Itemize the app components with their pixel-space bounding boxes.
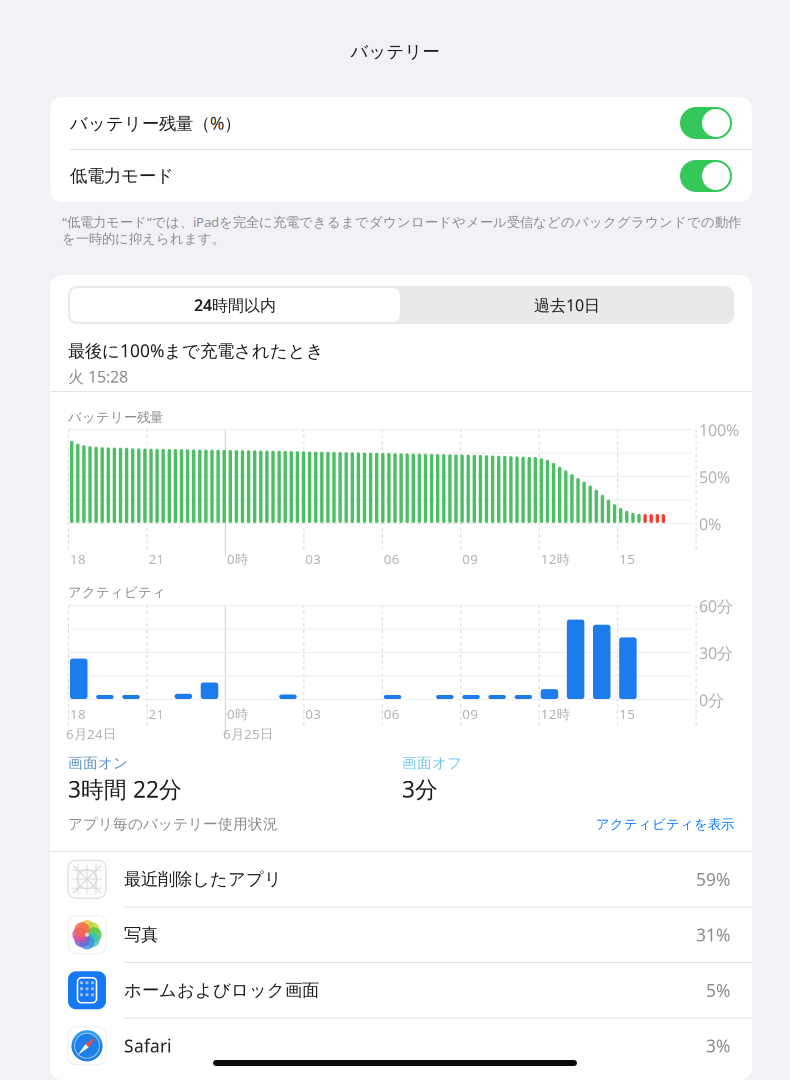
staticText: 59% <box>696 868 730 891</box>
staticText: 12時 <box>541 550 570 568</box>
staticText: 低電力モード <box>70 165 174 187</box>
staticText: 3分 <box>402 774 438 804</box>
staticText: 画面オフ <box>402 754 462 772</box>
staticText: 最近削除したアプリ <box>124 869 282 890</box>
staticText: 06 <box>384 550 400 568</box>
staticText: 15 <box>619 550 635 568</box>
button[interactable]: 低電力モード <box>50 150 752 202</box>
staticText: 09 <box>462 705 478 723</box>
button[interactable]: 過去10日 <box>402 288 732 322</box>
button[interactable]: アクティビティを表示 <box>594 816 734 832</box>
button[interactable]: 24時間以内 <box>70 288 400 322</box>
staticText: 0時 <box>227 550 248 568</box>
staticText: Safari <box>124 1034 171 1057</box>
staticText: 03 <box>305 705 321 723</box>
staticText: 15 <box>619 705 635 723</box>
staticText: 写真 <box>124 924 158 945</box>
staticText: 0% <box>699 513 721 535</box>
staticText: 18 <box>70 705 86 723</box>
staticText: 6月25日 <box>223 725 273 743</box>
button[interactable]: 最近削除したアプリ <box>50 852 752 906</box>
staticText: 06 <box>384 705 400 723</box>
staticText: 過去10日 <box>534 294 600 316</box>
staticText: 0時 <box>227 705 248 723</box>
staticText: 6月24日 <box>66 725 116 743</box>
staticText: “低電力モード”では、iPadを完全に充電できるまでダウンロードやメール受信など… <box>62 213 741 247</box>
staticText: バッテリー <box>350 41 439 62</box>
button[interactable]: Safari <box>50 1018 752 1073</box>
staticText: 09 <box>462 550 478 568</box>
staticText: バッテリー残量 <box>68 409 163 425</box>
staticText: ホームおよびロック画面 <box>124 980 319 1001</box>
staticText: 3時間 22分 <box>68 774 182 804</box>
staticText: 100% <box>699 419 739 441</box>
staticText: 0分 <box>699 689 724 711</box>
staticText: 3% <box>706 1034 730 1057</box>
staticText: 24時間以内 <box>194 294 276 316</box>
staticText: 画面オン <box>68 754 128 772</box>
staticText: 火 15:28 <box>68 366 128 387</box>
staticText: 50% <box>699 466 730 488</box>
staticText: 03 <box>305 550 321 568</box>
staticText: 18 <box>70 550 86 568</box>
staticText: 31% <box>696 923 730 946</box>
staticText: アクティビティ <box>68 584 166 600</box>
button[interactable]: バッテリー残量（%） <box>50 97 752 149</box>
staticText: バッテリー残量（%） <box>70 111 241 134</box>
staticText: アクティビティを表示 <box>596 816 734 832</box>
staticText: 60分 <box>699 595 733 617</box>
staticText: 最後に100%まで充電されたとき <box>68 339 324 362</box>
staticText: アプリ毎のバッテリー使用状況 <box>68 815 278 833</box>
staticText: 30分 <box>699 642 733 664</box>
staticText: 21 <box>148 550 164 568</box>
staticText: 21 <box>148 705 164 723</box>
button[interactable]: 写真 <box>50 907 752 962</box>
button[interactable]: ホームおよびロック画面 <box>50 963 752 1017</box>
staticText: 5% <box>706 979 730 1002</box>
staticText: 12時 <box>541 705 570 723</box>
